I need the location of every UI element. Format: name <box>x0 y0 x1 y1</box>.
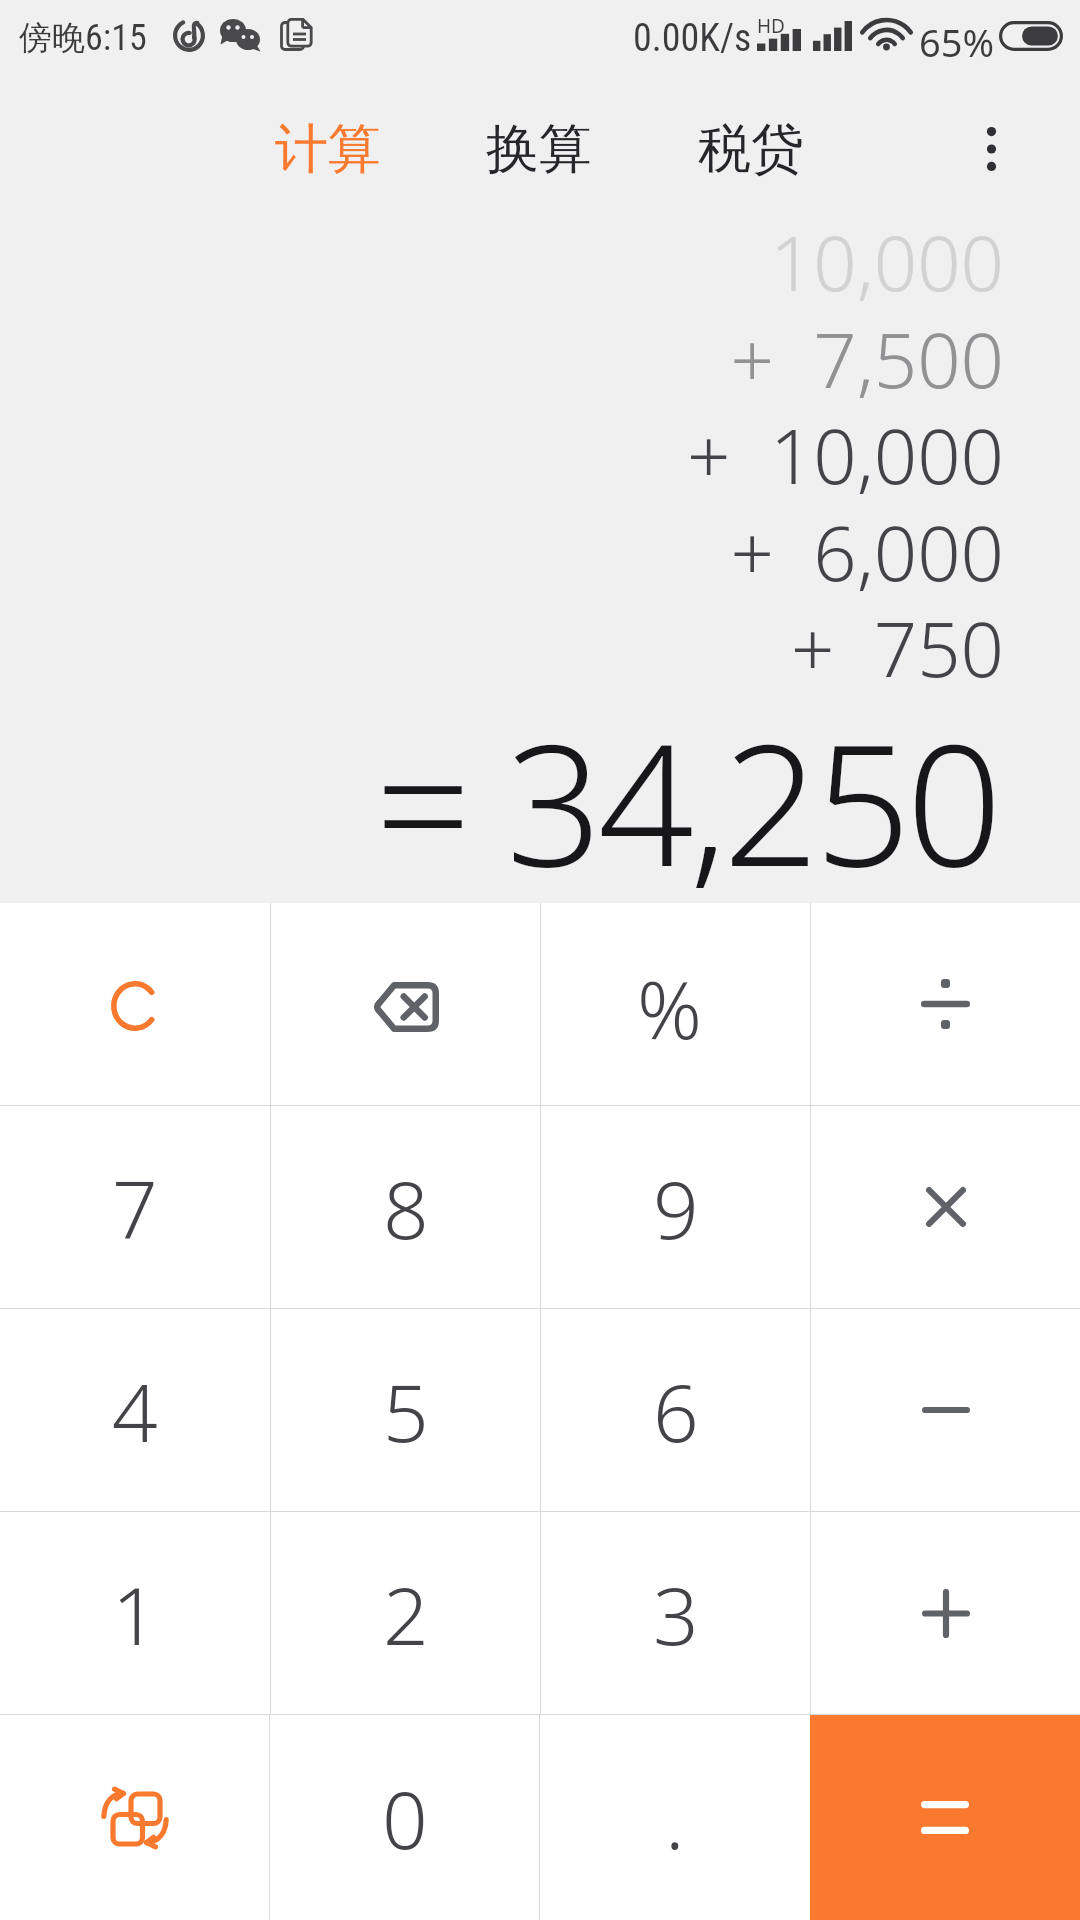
staticText: 6:15 <box>85 17 147 59</box>
button[interactable]: Backspace <box>271 903 540 1105</box>
staticText: 7 <box>112 1153 158 1262</box>
button[interactable]: Convert <box>0 1715 269 1920</box>
staticText: 傍晚 <box>19 17 85 59</box>
button[interactable]: Plus <box>811 1512 1080 1714</box>
staticText: + 750 <box>0 596 1004 700</box>
button[interactable]: 4 <box>0 1309 270 1511</box>
staticText: 3 <box>653 1559 699 1668</box>
button[interactable]: Equals <box>810 1715 1080 1920</box>
button[interactable]: 3 <box>541 1512 810 1714</box>
button[interactable]: 6 <box>541 1309 810 1511</box>
button[interactable]: More options <box>946 104 1036 194</box>
button[interactable]: . <box>540 1715 810 1920</box>
button[interactable]: 1 <box>0 1512 270 1714</box>
staticText: + 7,500 <box>0 307 1004 411</box>
staticText: 0 <box>382 1763 428 1872</box>
staticText: + 6,000 <box>0 500 1004 604</box>
staticText: 换算 <box>486 116 592 183</box>
button[interactable]: Minus <box>811 1309 1080 1511</box>
staticText: = 34,250 <box>0 686 998 915</box>
staticText: 6 <box>653 1356 699 1465</box>
button[interactable]: 换算 <box>466 104 612 194</box>
staticText: 0.00K/s <box>633 16 752 61</box>
button[interactable]: 8 <box>271 1106 540 1308</box>
staticText: 5 <box>383 1356 429 1465</box>
staticText: 65% <box>919 16 995 68</box>
button[interactable]: Multiply <box>811 1106 1080 1308</box>
button[interactable]: Clear <box>0 903 270 1105</box>
staticText: HD <box>757 13 785 39</box>
staticText: 9 <box>653 1153 699 1262</box>
button[interactable]: Divide <box>811 903 1080 1105</box>
staticText: % <box>637 953 702 1062</box>
staticText: 8 <box>383 1153 429 1262</box>
button[interactable]: 2 <box>271 1512 540 1714</box>
staticText: . <box>665 1763 685 1872</box>
button[interactable]: 0 <box>270 1715 539 1920</box>
button[interactable]: 7 <box>0 1106 270 1308</box>
button[interactable]: 9 <box>541 1106 810 1308</box>
button[interactable]: 5 <box>271 1309 540 1511</box>
staticText: 税贷 <box>698 116 804 183</box>
staticText: 10,000 <box>0 210 1004 314</box>
staticText: 2 <box>383 1559 429 1668</box>
staticText: 计算 <box>275 116 381 183</box>
button[interactable]: 税贷 <box>678 104 824 194</box>
button[interactable]: % <box>541 903 810 1105</box>
staticText: 4 <box>112 1356 158 1465</box>
staticText: + 10,000 <box>0 403 1004 507</box>
staticText: 1 <box>112 1559 158 1668</box>
button[interactable]: 计算 <box>255 104 401 194</box>
